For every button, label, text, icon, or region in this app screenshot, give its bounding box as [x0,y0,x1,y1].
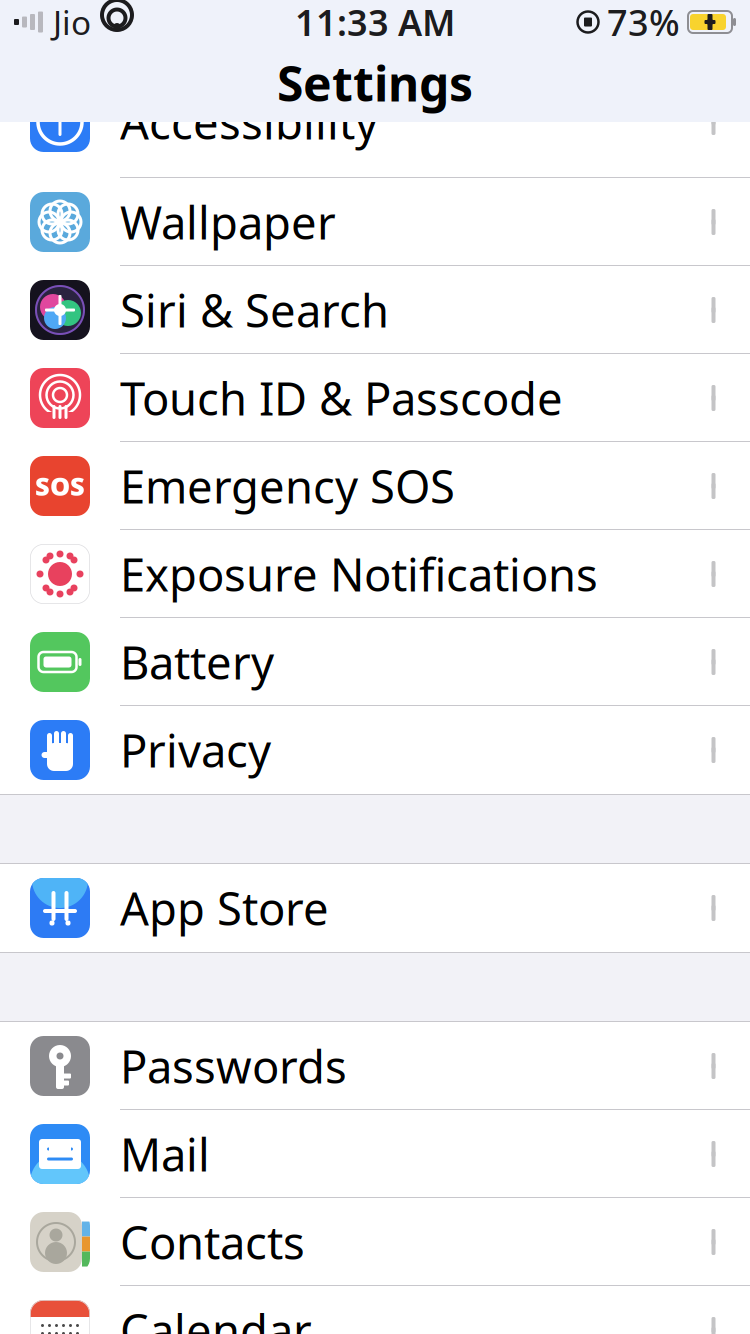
button[interactable]: Touch ID & Passcode [0,354,750,442]
staticText: 11:33 AM [295,0,455,46]
button[interactable]: SOS [0,442,750,530]
button[interactable]: Privacy [0,706,750,794]
staticText: Jio [53,0,91,44]
button[interactable]: Calendar [0,1286,750,1334]
staticText: Exposure Notifications [120,544,598,604]
button[interactable]: Passwords [0,1022,750,1110]
staticText: Battery [120,632,274,692]
staticText: Emergency SOS [120,456,455,516]
staticText: Contacts [120,1212,305,1272]
staticText: Privacy [120,720,271,780]
button[interactable]: Siri & Search [0,266,750,354]
button[interactable]: App Store [0,864,750,952]
staticText: Mail [120,1124,210,1184]
button[interactable]: Wallpaper [0,178,750,266]
staticText: Settings [277,51,473,115]
staticText: SOS [35,469,85,503]
button[interactable]: Contacts [0,1198,750,1286]
staticText: Touch ID & Passcode [120,368,563,428]
staticText: Wallpaper [120,192,336,252]
button[interactable]: Mail [0,1110,750,1198]
button[interactable]: Exposure Notifications [0,530,750,618]
staticText: Siri & Search [120,280,389,340]
staticText: App Store [120,878,329,938]
button[interactable]: Battery [0,618,750,706]
staticText: Calendar [120,1300,312,1334]
staticText: 73% [607,0,680,46]
staticText: Accessibility [120,92,378,152]
staticText: Passwords [120,1036,347,1096]
